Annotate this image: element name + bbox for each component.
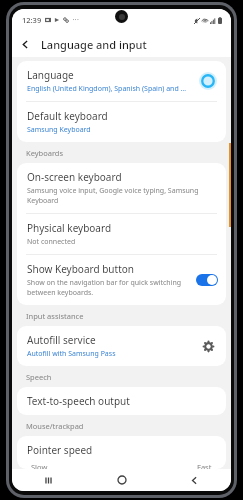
button[interactable]: Home: [85, 469, 158, 491]
button[interactable]: Text-to-speech output: [17, 387, 226, 415]
staticText: 12:39: [22, 15, 42, 25]
button[interactable]: Language: [17, 61, 226, 101]
staticText: On-screen keyboard: [27, 170, 122, 184]
button[interactable]: Physical keyboard: [17, 214, 226, 254]
staticText: Mouse/trackpad: [26, 421, 84, 431]
button[interactable]: Back: [12, 31, 38, 57]
staticText: Language: [27, 68, 74, 82]
button[interactable]: Show Keyboard button toggle: [196, 274, 218, 286]
button[interactable]: Recents: [12, 469, 85, 491]
button[interactable]: Pointer speed: [17, 436, 226, 469]
staticText: Samsung voice input, Google voice typing…: [27, 186, 199, 196]
staticText: Input assistance: [26, 311, 84, 321]
staticText: Autofill service: [27, 333, 96, 347]
button[interactable]: Autofill service: [17, 326, 226, 366]
staticText: Physical keyboard: [27, 221, 112, 235]
staticText: Speech: [26, 372, 52, 382]
staticText: Keyboards: [26, 148, 64, 158]
button[interactable]: Autofill settings: [198, 336, 218, 356]
button[interactable]: Default keyboard: [17, 102, 226, 142]
staticText: Keyboard: [27, 196, 59, 206]
staticText: Slow: [31, 462, 48, 469]
staticText: English (United Kingdom), Spanish (Spain…: [27, 84, 187, 94]
staticText: Pointer speed: [27, 443, 93, 457]
staticText: ⋯: [72, 16, 79, 24]
staticText: Show Keyboard button: [27, 262, 134, 276]
button[interactable]: Language settings: [198, 71, 218, 91]
staticText: Text-to-speech output: [27, 394, 130, 408]
staticText: Default keyboard: [27, 109, 108, 123]
button[interactable]: Show Keyboard button: [17, 255, 226, 305]
staticText: Not connected: [27, 237, 76, 247]
button[interactable]: Back: [158, 469, 231, 491]
staticText: Autofill with Samsung Pass: [27, 349, 116, 359]
staticText: Show on the navigation bar for quick swi…: [27, 278, 182, 288]
staticText: between keyboards.: [27, 288, 94, 298]
staticText: Language and input: [41, 37, 147, 52]
staticText: Samsung Keyboard: [27, 125, 91, 135]
staticText: Fast: [197, 462, 212, 469]
button[interactable]: On-screen keyboard: [17, 163, 226, 213]
